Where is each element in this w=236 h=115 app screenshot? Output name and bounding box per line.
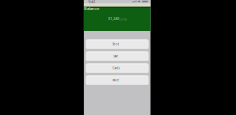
staticText: Balance: [84, 6, 99, 11]
staticText: today: [119, 18, 126, 21]
button[interactable]: Cards: [86, 63, 149, 73]
staticText: $1,240: [108, 16, 119, 21]
button[interactable]: Send: [86, 39, 149, 49]
button[interactable]: More: [86, 75, 149, 85]
staticText: Save: [113, 54, 118, 58]
staticText: Send: [112, 42, 119, 46]
button[interactable]: Save: [86, 51, 149, 61]
staticText: More: [112, 78, 119, 82]
staticText: 9:41: [88, 0, 95, 4]
staticText: Cards: [112, 66, 119, 70]
